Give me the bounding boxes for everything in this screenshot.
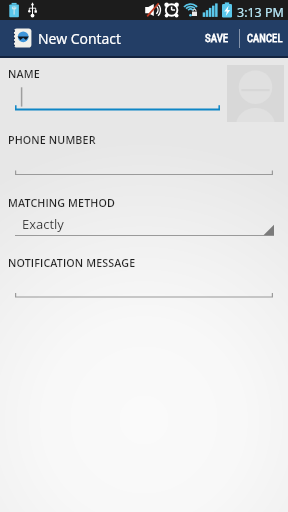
staticText: 3:13 PM [237, 4, 284, 21]
button[interactable]: CANCEL [240, 20, 288, 56]
staticText: NOTIFICATION MESSAGE [8, 256, 136, 271]
staticText: New Contact [38, 29, 121, 48]
button[interactable] [8, 147, 278, 177]
button[interactable]: Exactly [15, 212, 274, 235]
button[interactable] [8, 82, 278, 112]
button[interactable]: SAVE [194, 20, 239, 56]
staticText: CANCEL [247, 32, 283, 44]
button[interactable]: Contact photo [227, 65, 284, 122]
staticText: PHONE NUMBER [8, 133, 96, 148]
staticText: Exactly [22, 215, 64, 233]
other: App icon [12, 28, 32, 48]
staticText: SAVE [205, 32, 229, 45]
button[interactable]: App icon [0, 20, 125, 56]
button[interactable] [8, 270, 278, 300]
staticText: MATCHING METHOD [8, 196, 115, 211]
staticText: NAME [8, 67, 40, 82]
